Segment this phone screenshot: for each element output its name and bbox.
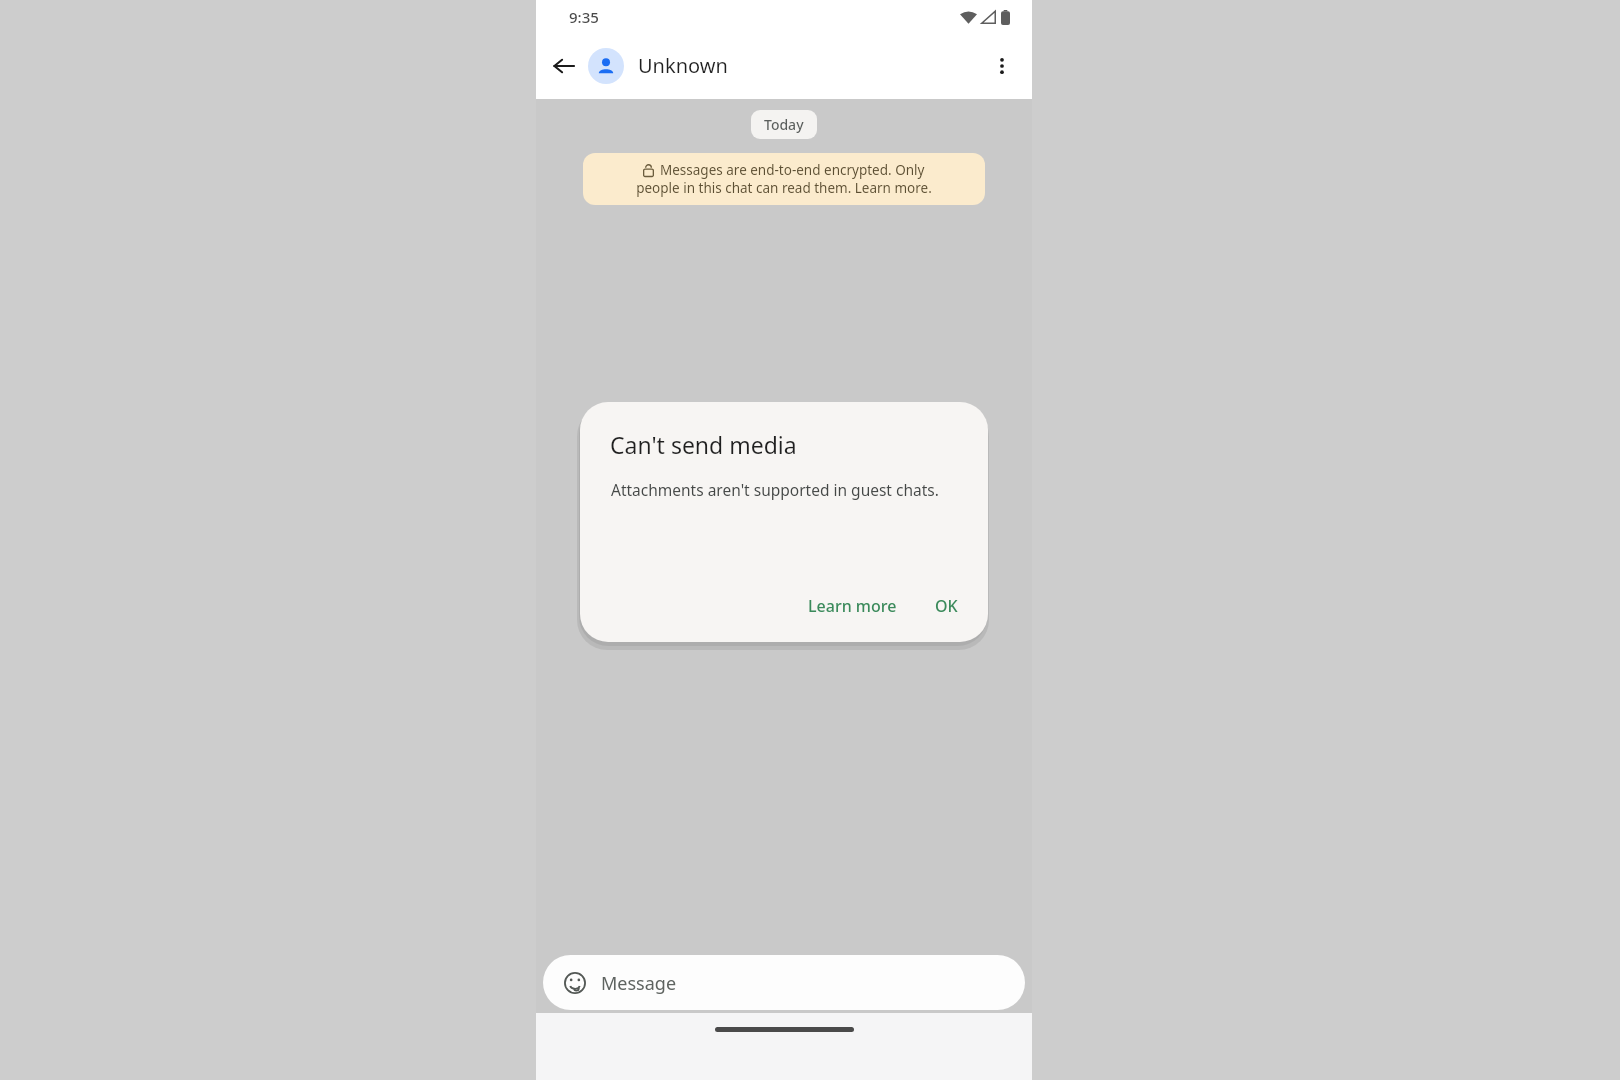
staticText: people in this chat can read them. Learn… bbox=[636, 179, 932, 197]
button[interactable]: More options bbox=[980, 44, 1024, 88]
button[interactable]: Emoji bbox=[543, 955, 1025, 1010]
button[interactable]: Contact avatar bbox=[588, 48, 624, 84]
staticText: Can't send media bbox=[610, 429, 797, 460]
staticText: Message bbox=[601, 971, 677, 996]
button[interactable]: Learn more bbox=[796, 586, 909, 626]
staticText: Unknown bbox=[638, 52, 728, 79]
button[interactable]: Emoji bbox=[560, 968, 590, 998]
staticText: OK bbox=[935, 595, 958, 617]
staticText: Attachments aren't supported in guest ch… bbox=[611, 479, 939, 500]
button[interactable]: OK bbox=[923, 586, 970, 626]
staticText: Learn more bbox=[808, 595, 897, 617]
staticText: 9:35 bbox=[569, 7, 599, 27]
staticText: Messages are end-to-end encrypted. Only bbox=[660, 161, 925, 179]
staticText: GSMARENAINFO bbox=[602, 482, 898, 528]
button[interactable]: Back bbox=[542, 44, 586, 88]
staticText: Today bbox=[764, 115, 804, 134]
button[interactable]: Today bbox=[751, 110, 817, 139]
staticText: GSMARENAINFO bbox=[602, 424, 898, 470]
button[interactable]: Messages are end-to-end encrypted. Only bbox=[583, 153, 985, 205]
